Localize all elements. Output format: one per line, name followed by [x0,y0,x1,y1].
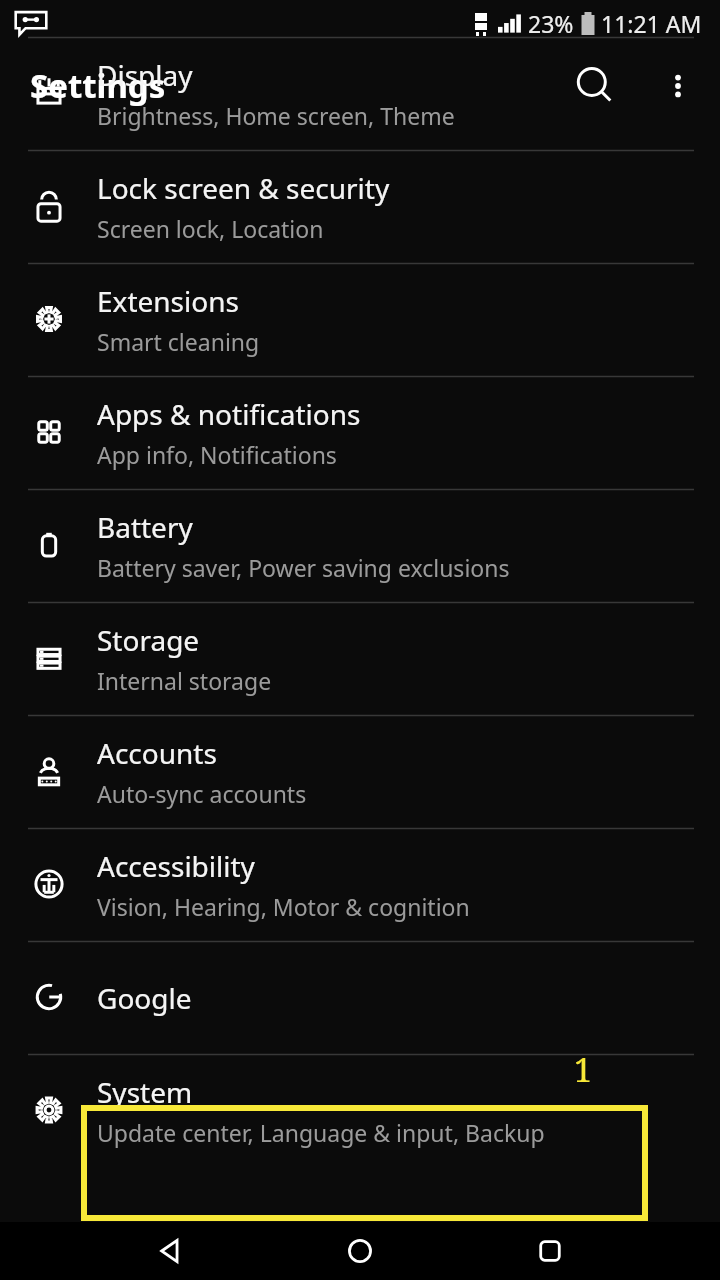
staticText: 11:21 AM [601,8,702,39]
staticText: Internal storage [97,665,272,696]
staticText: Apps & notifications [97,395,361,433]
staticText: 1 [574,1048,592,1092]
staticText: Extensions [97,282,239,320]
staticText: Lock screen & security [97,169,390,207]
staticText: 23% [528,8,574,39]
button[interactable]: More options [646,54,710,118]
button[interactable]: Search [557,48,633,124]
button[interactable]: Battery [0,489,720,602]
staticText: Battery saver, Power saving exclusions [97,552,510,583]
staticText: System [97,1073,193,1111]
staticText: Accessibility [97,847,255,885]
staticText: Settings [30,63,166,108]
staticText: Display [97,56,193,94]
staticText: Smart cleaning [97,326,260,357]
staticText: Auto-sync accounts [97,778,307,809]
button[interactable]: Back [132,1222,208,1280]
staticText: Update center, Language & input, Backup [97,1117,545,1148]
staticText: Brightness, Home screen, Theme [97,100,455,131]
staticText: Accounts [97,734,217,772]
button[interactable]: Accessibility [0,828,720,941]
button[interactable]: Display [0,37,720,150]
staticText: Google [97,979,192,1017]
button[interactable]: Home [322,1222,398,1280]
staticText: App info, Notifications [97,439,337,470]
staticText: Vision, Hearing, Motor & cognition [97,891,470,922]
staticText: Storage [97,621,200,659]
button[interactable]: System [0,1054,720,1167]
staticText: Screen lock, Location [97,213,324,244]
button[interactable]: Lock screen & security [0,150,720,263]
button[interactable]: Apps & notifications [0,376,720,489]
button[interactable]: Storage [0,602,720,715]
button[interactable]: Google [0,941,720,1054]
button[interactable]: Recent apps [512,1222,588,1280]
staticText: Battery [97,508,193,546]
button[interactable]: Extensions [0,263,720,376]
button[interactable]: Accounts [0,715,720,828]
